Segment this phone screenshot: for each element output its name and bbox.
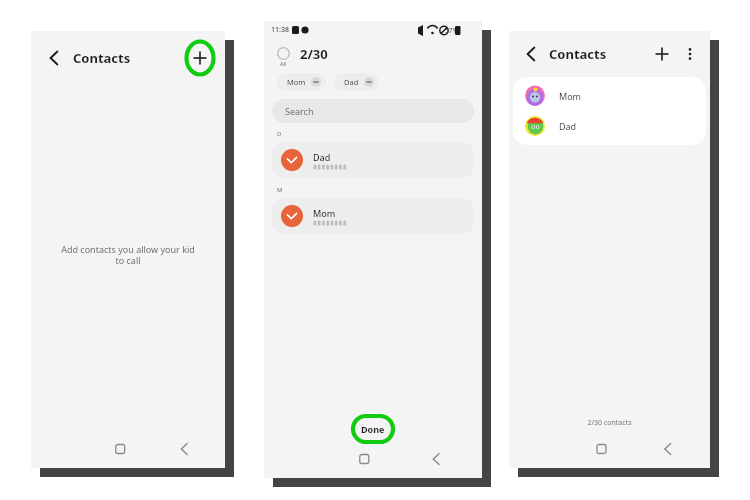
staticText: D: [277, 130, 282, 138]
button[interactable]: Mom: [513, 81, 706, 111]
staticText: 2/30 contacts: [509, 418, 710, 428]
staticText: Contacts: [73, 49, 131, 67]
staticText: Add contacts you allow your kid to call: [59, 243, 197, 267]
staticText: M: [277, 186, 283, 194]
button[interactable]: Back: [41, 45, 67, 71]
staticText: Mom: [559, 90, 582, 102]
staticText: All: [280, 60, 287, 67]
button[interactable]: Back: [519, 42, 543, 66]
button[interactable]: Dad: [513, 111, 706, 141]
button[interactable]: Select all: [277, 47, 290, 60]
button[interactable]: More options: [680, 44, 700, 64]
button[interactable]: Add contact: [650, 42, 674, 66]
staticText: Mom: [313, 207, 336, 219]
staticText: Dad: [559, 120, 577, 132]
button[interactable]: Search: [272, 99, 474, 123]
button[interactable]: Dad: [272, 142, 474, 178]
button[interactable]: Dad: [334, 73, 379, 91]
staticText: Contacts: [549, 45, 607, 63]
button[interactable]: Mom: [272, 198, 474, 234]
button[interactable]: Mom: [277, 73, 326, 91]
staticText: Done: [361, 423, 385, 435]
button[interactable]: Add contact: [185, 40, 215, 76]
staticText: 57%: [445, 26, 458, 35]
staticText: Search: [285, 105, 314, 117]
staticText: 11:38: [271, 25, 289, 35]
staticText: 2/30: [300, 45, 328, 63]
button[interactable]: Done: [351, 414, 395, 444]
staticText: Dad: [313, 151, 331, 163]
staticText: Mom: [287, 77, 306, 87]
staticText: Dad: [344, 77, 359, 87]
